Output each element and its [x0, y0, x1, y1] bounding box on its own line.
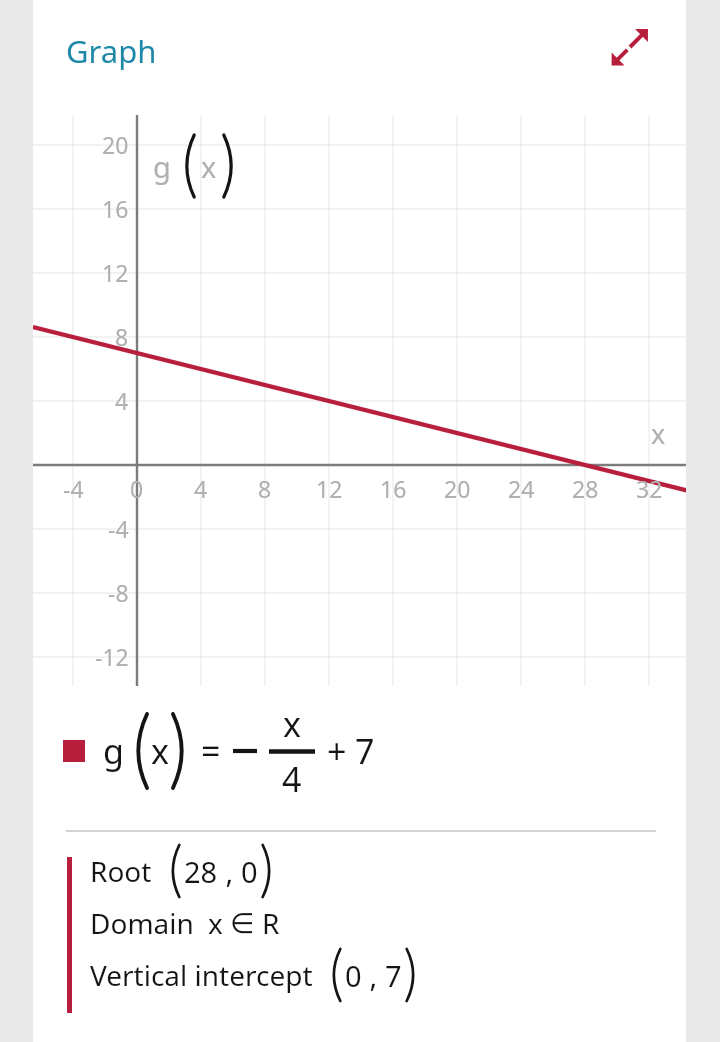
staticText: 8 [115, 321, 129, 352]
staticText: , [362, 956, 385, 995]
staticText: 7 [355, 728, 375, 774]
staticText: 4 [115, 385, 129, 416]
staticText: 20 [444, 473, 471, 504]
staticText: -12 [95, 641, 129, 672]
staticText: 7 [385, 956, 402, 995]
staticText: Graph [66, 30, 157, 72]
staticText: 0 [241, 852, 258, 891]
staticText: Root [90, 852, 152, 890]
staticText: + [327, 728, 347, 774]
button[interactable]: Expand graph [598, 15, 662, 79]
staticText: x [201, 147, 217, 186]
staticText: = [201, 728, 221, 774]
staticText: 8 [258, 473, 272, 504]
staticText: 16 [380, 473, 407, 504]
staticText: -8 [108, 577, 129, 608]
staticText: 0 [345, 956, 362, 995]
staticText: Domain [90, 904, 194, 942]
staticText: 28 [184, 852, 218, 891]
staticText: g [103, 728, 124, 774]
staticText: x [208, 904, 223, 942]
staticText: x [283, 701, 301, 747]
button[interactable]: Vertical intercept [90, 949, 720, 1001]
staticText: 4 [194, 473, 208, 504]
staticText: x [651, 415, 666, 452]
staticText: R [262, 904, 280, 942]
staticText: 32 [636, 473, 663, 504]
staticText: x [151, 728, 169, 774]
button[interactable]: Root [90, 845, 720, 897]
staticText: 28 [572, 473, 599, 504]
staticText: -4 [108, 513, 129, 544]
staticText: 12 [316, 473, 343, 504]
staticText: 16 [102, 193, 129, 224]
button[interactable]: Domain [90, 897, 720, 949]
staticText: ∈ [230, 907, 255, 940]
staticText: g [153, 147, 171, 186]
staticText: 0 [130, 473, 144, 504]
staticText: 12 [102, 257, 129, 288]
staticText: 4 [282, 756, 302, 802]
staticText: Vertical intercept [90, 956, 313, 994]
staticText: , [218, 852, 241, 891]
staticText: 20 [102, 129, 129, 160]
button[interactable]: g [33, 686, 686, 816]
staticText: 24 [508, 473, 535, 504]
staticText: -4 [63, 473, 84, 504]
